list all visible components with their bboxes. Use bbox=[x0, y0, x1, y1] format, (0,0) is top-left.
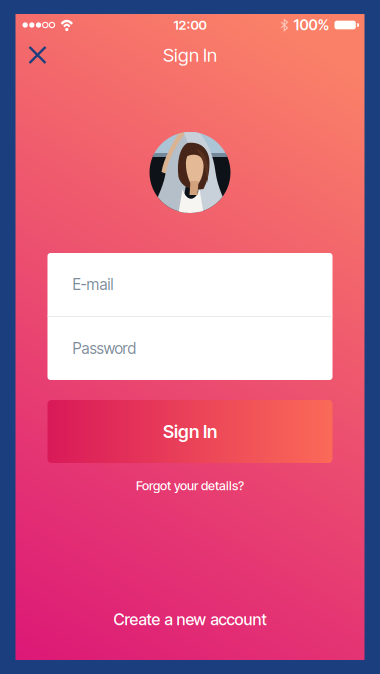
button[interactable]: Create a new account bbox=[15, 596, 364, 643]
staticText: Forgot your details? bbox=[136, 478, 244, 493]
staticText: Sign In bbox=[163, 44, 217, 66]
staticText: 100% bbox=[293, 16, 329, 34]
button[interactable]: Sign In bbox=[47, 400, 332, 463]
staticText: Create a new account bbox=[113, 610, 266, 629]
staticText: Password bbox=[72, 339, 136, 358]
staticText: Sign In bbox=[163, 421, 217, 442]
staticText: E-mail bbox=[72, 275, 113, 294]
button[interactable]: Forgot your details? bbox=[124, 471, 256, 500]
staticText: 12:00 bbox=[173, 17, 206, 33]
button[interactable]: Close bbox=[15, 36, 61, 74]
